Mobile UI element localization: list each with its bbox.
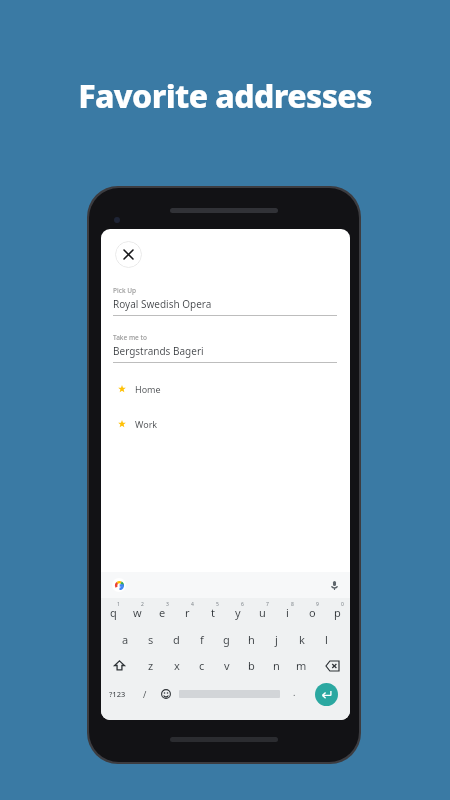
staticText: ?123 (109, 689, 126, 699)
button[interactable]: a (112, 625, 138, 652)
staticText: d (173, 632, 180, 647)
staticText: Home (135, 383, 161, 395)
staticText: m (296, 658, 307, 673)
button[interactable]: c (189, 652, 214, 679)
button[interactable]: Emoji (155, 679, 176, 709)
staticText: s (148, 632, 154, 647)
staticText: c (199, 658, 205, 673)
button[interactable]: ?123 (101, 679, 134, 709)
staticText: Royal Swedish Opera (113, 297, 212, 311)
staticText: o (309, 605, 316, 620)
button[interactable]: n (264, 652, 289, 679)
staticText: Take me to (113, 333, 147, 342)
button[interactable]: j (264, 625, 289, 652)
staticText: h (248, 632, 255, 647)
button[interactable]: d (164, 625, 189, 652)
staticText: 1 (117, 601, 120, 608)
staticText: w (133, 605, 142, 620)
staticText: 9 (316, 601, 319, 608)
staticText: q (110, 605, 117, 620)
staticText: . (293, 686, 296, 698)
button[interactable]: 8 (275, 598, 300, 625)
button[interactable]: 4 (175, 598, 200, 625)
staticText: 0 (341, 601, 344, 608)
button[interactable]: Home (101, 377, 350, 401)
button[interactable]: Space (176, 679, 283, 709)
button[interactable]: Backspace (314, 652, 350, 679)
staticText: k (299, 632, 305, 647)
button[interactable]: 7 (250, 598, 275, 625)
button[interactable]: 1 (101, 598, 125, 625)
button[interactable]: Voice input (328, 579, 340, 591)
button[interactable]: Pick Up (113, 286, 337, 316)
button[interactable]: s (138, 625, 164, 652)
staticText: y (235, 605, 241, 620)
button[interactable]: . (283, 679, 306, 709)
button[interactable]: Take me to (113, 333, 337, 363)
staticText: v (224, 658, 230, 673)
button[interactable]: 5 (200, 598, 225, 625)
button[interactable]: 3 (150, 598, 175, 625)
staticText: 8 (291, 601, 294, 608)
staticText: f (200, 632, 204, 647)
button[interactable]: k (289, 625, 314, 652)
staticText: 3 (166, 601, 169, 608)
staticText: t (211, 605, 215, 620)
button[interactable]: f (189, 625, 214, 652)
staticText: l (325, 632, 328, 647)
button[interactable]: Enter (315, 683, 338, 706)
staticText: 4 (191, 601, 194, 608)
button[interactable]: 2 (125, 598, 150, 625)
button[interactable]: m (289, 652, 314, 679)
button[interactable]: b (239, 652, 264, 679)
staticText: g (223, 632, 230, 647)
button[interactable]: / (134, 679, 155, 709)
staticText: p (334, 605, 341, 620)
staticText: Favorite addresses (0, 74, 450, 118)
staticText: 5 (216, 601, 219, 608)
button[interactable]: v (214, 652, 239, 679)
staticText: n (273, 658, 280, 673)
staticText: z (148, 658, 154, 673)
staticText: r (185, 605, 190, 620)
button[interactable]: 6 (225, 598, 250, 625)
staticText: 6 (241, 601, 244, 608)
staticText: 7 (266, 601, 269, 608)
button[interactable]: 9 (300, 598, 325, 625)
staticText: x (174, 658, 180, 673)
staticText: j (275, 632, 278, 647)
button[interactable]: Work (101, 412, 350, 436)
button[interactable]: h (239, 625, 264, 652)
button[interactable]: 0 (325, 598, 350, 625)
button[interactable]: z (138, 652, 164, 679)
staticText: 2 (141, 601, 144, 608)
staticText: b (248, 658, 255, 673)
button[interactable]: Shift (101, 652, 138, 679)
staticText: a (122, 632, 129, 647)
staticText: u (259, 605, 266, 620)
staticText: i (286, 605, 289, 620)
staticText: / (143, 688, 147, 700)
button[interactable]: Google (112, 578, 126, 592)
staticText: Bergstrands Bageri (113, 344, 204, 358)
button[interactable]: x (164, 652, 189, 679)
button[interactable]: l (314, 625, 339, 652)
staticText: e (159, 605, 166, 620)
button[interactable]: g (214, 625, 239, 652)
staticText: Pick Up (113, 286, 137, 295)
button[interactable]: Close (115, 241, 142, 268)
staticText: Work (135, 418, 158, 430)
